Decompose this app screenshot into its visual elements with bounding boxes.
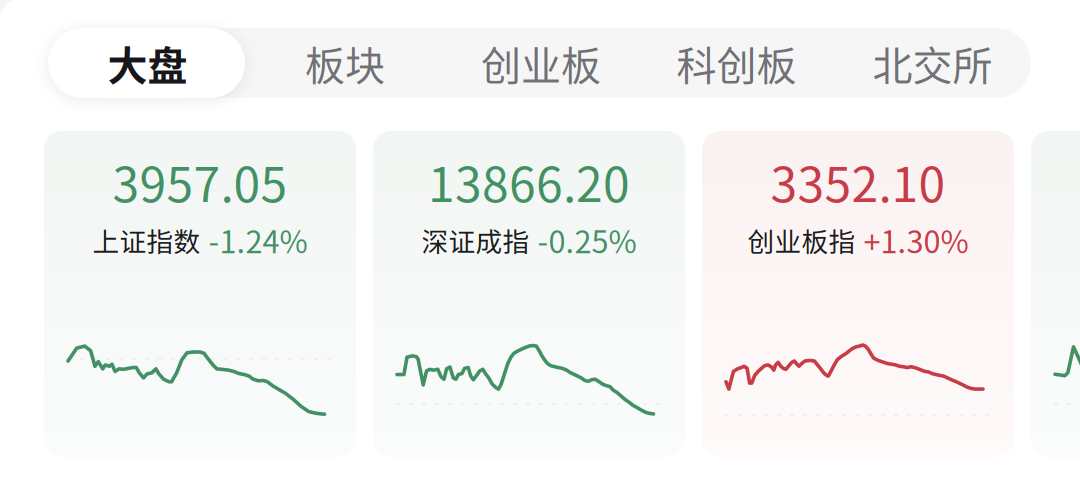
button[interactable]: 创业板 bbox=[443, 28, 639, 98]
staticText: 13866.20 bbox=[428, 146, 630, 216]
button[interactable]: 13866.20 bbox=[373, 131, 685, 457]
staticText: 3957.05 bbox=[112, 146, 287, 216]
staticText: 北交所 bbox=[872, 34, 992, 92]
staticText: 科创板 bbox=[676, 34, 796, 92]
staticText: 大盘 bbox=[107, 34, 187, 92]
staticText: -0.25% bbox=[537, 218, 636, 262]
button[interactable]: 3352.10 bbox=[702, 131, 1014, 457]
staticText: 板块 bbox=[305, 34, 385, 92]
button[interactable]: 板块 bbox=[247, 28, 443, 98]
staticText: 创业板指 bbox=[747, 221, 855, 259]
button[interactable]: 科创板 bbox=[639, 28, 834, 98]
staticText: 创业板 bbox=[481, 34, 601, 92]
button[interactable]: 北交所 bbox=[834, 28, 1031, 98]
button[interactable]: 2210.44 bbox=[1031, 131, 1080, 457]
staticText: 3352.10 bbox=[770, 146, 945, 216]
button[interactable]: 3957.05 bbox=[44, 131, 356, 457]
staticText: 上证指数 bbox=[92, 221, 200, 259]
staticText: +1.30% bbox=[863, 218, 968, 262]
staticText: -1.24% bbox=[208, 218, 307, 262]
button[interactable]: 大盘 bbox=[48, 28, 247, 98]
staticText: 深证成指 bbox=[421, 221, 529, 259]
